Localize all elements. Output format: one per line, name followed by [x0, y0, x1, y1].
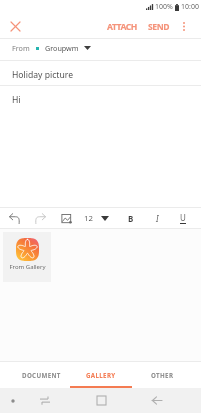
- staticText: Holiday picture: [12, 69, 73, 81]
- staticText: ATTACH: [107, 21, 137, 33]
- button[interactable]: From: [0, 39, 201, 60]
- staticText: B: [128, 213, 134, 224]
- button[interactable]: Close: [4, 15, 27, 38]
- staticText: Groupwm: [45, 43, 79, 53]
- button[interactable]: Italic: [148, 209, 166, 227]
- staticText: SEND: [148, 21, 170, 33]
- button[interactable]: Holiday picture: [0, 61, 201, 85]
- button[interactable]: Undo: [5, 209, 23, 227]
- staticText: From: [12, 43, 30, 53]
- button[interactable]: Home: [89, 388, 114, 413]
- button[interactable]: Insert image: [57, 209, 75, 227]
- button[interactable]: Hi: [0, 86, 201, 207]
- button[interactable]: Bold: [122, 209, 140, 227]
- button[interactable]: 12: [81, 209, 112, 228]
- button[interactable]: Hide keyboard: [1, 389, 25, 413]
- staticText: DOCUMENT: [22, 371, 61, 379]
- button[interactable]: SEND: [144, 16, 174, 38]
- button[interactable]: ATTACH: [103, 16, 141, 38]
- button[interactable]: DOCUMENT: [11, 362, 71, 388]
- staticText: 10:00: [181, 2, 199, 12]
- staticText: From Gallery: [9, 263, 46, 271]
- staticText: 100%: [155, 2, 173, 12]
- button[interactable]: From Gallery: [3, 232, 51, 282]
- button[interactable]: Redo: [31, 209, 49, 227]
- staticText: GALLERY: [86, 371, 116, 379]
- button[interactable]: More options: [174, 15, 194, 38]
- staticText: U: [180, 212, 186, 223]
- button[interactable]: GALLERY: [70, 362, 132, 388]
- staticText: Hi: [12, 94, 21, 106]
- staticText: I: [156, 213, 159, 224]
- button[interactable]: Recents: [32, 388, 57, 413]
- staticText: OTHER: [151, 371, 174, 379]
- button[interactable]: Underline: [174, 209, 192, 227]
- staticText: 12: [84, 213, 93, 224]
- button[interactable]: Back: [144, 388, 169, 413]
- button[interactable]: OTHER: [132, 362, 192, 388]
